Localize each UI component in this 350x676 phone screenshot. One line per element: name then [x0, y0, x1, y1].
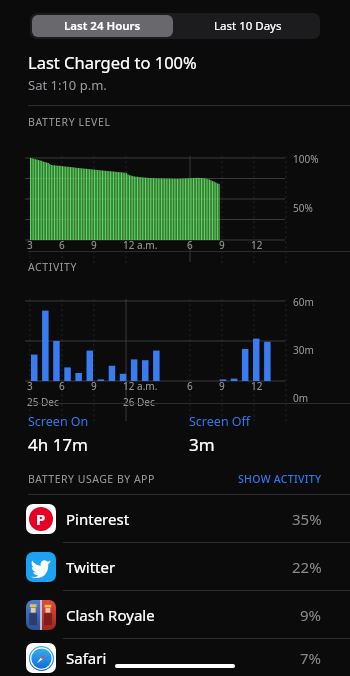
staticText: Twitter — [66, 557, 292, 577]
button[interactable]: Twitter — [0, 543, 350, 590]
staticText: Screen On — [28, 413, 89, 430]
staticText: 9% — [300, 605, 322, 625]
staticText: 26 Dec — [123, 395, 155, 409]
staticText: 12 — [251, 238, 263, 252]
staticText: 9 — [219, 238, 225, 252]
staticText: Last Charged to 100% — [28, 51, 197, 73]
staticText: 7% — [300, 648, 322, 668]
button[interactable]: P — [0, 495, 350, 542]
staticText: 6 — [59, 238, 65, 252]
button[interactable]: Last 24 Hours — [32, 15, 173, 37]
staticText: 25 Dec — [27, 395, 59, 409]
button[interactable]: Clash Royale — [0, 591, 350, 638]
staticText: 6 — [59, 379, 65, 393]
staticText: ACTIVITY — [28, 260, 77, 274]
staticText: P — [36, 509, 46, 529]
staticText: 50% — [293, 201, 313, 215]
staticText: 6 — [187, 238, 193, 252]
staticText: Sat 1:10 p.m. — [28, 76, 107, 94]
staticText: Last 10 Days — [214, 18, 282, 34]
staticText: Last 24 Hours — [64, 18, 141, 34]
button[interactable]: Last 10 Days — [175, 13, 320, 39]
staticText: 22% — [292, 557, 322, 577]
staticText: 4h 17m — [28, 433, 88, 456]
staticText: 12 a.m. — [123, 379, 158, 393]
staticText: 9 — [91, 238, 97, 252]
staticText: 35% — [292, 509, 322, 529]
staticText: 3 — [27, 238, 33, 252]
staticText: 0m — [293, 391, 309, 403]
staticText: 12 a.m. — [123, 238, 158, 252]
button[interactable]: Safari — [0, 639, 350, 676]
staticText: Clash Royale — [66, 605, 300, 625]
staticText: 6 — [187, 379, 193, 393]
staticText: 60m — [293, 295, 314, 309]
staticText: SHOW ACTIVITY — [238, 472, 322, 486]
staticText: Screen Off — [189, 413, 251, 430]
staticText: 12 — [251, 379, 263, 393]
staticText: Safari — [66, 648, 300, 668]
staticText: 3 — [27, 379, 33, 393]
staticText: 9 — [91, 379, 97, 393]
staticText: Pinterest — [66, 509, 292, 529]
button[interactable]: SHOW ACTIVITY — [238, 472, 322, 486]
staticText: BATTERY USAGE BY APP — [28, 472, 238, 486]
staticText: 30m — [293, 343, 314, 357]
staticText: 9 — [219, 379, 225, 393]
staticText: BATTERY LEVEL — [28, 115, 111, 129]
staticText: 3m — [189, 433, 215, 456]
staticText: 100% — [293, 152, 319, 166]
